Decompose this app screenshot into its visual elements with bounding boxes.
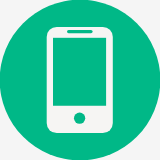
button[interactable]: Open phone app (0, 0, 160, 160)
